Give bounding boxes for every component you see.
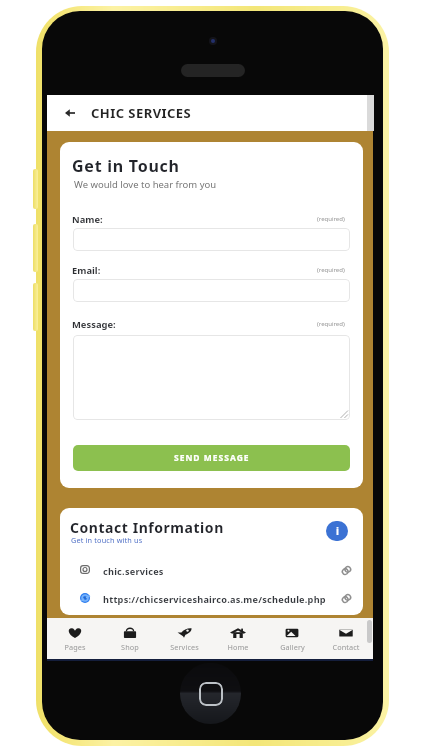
button[interactable]: chic.services (60, 559, 363, 580)
staticText: Shop (121, 642, 139, 652)
staticText: (required) (317, 266, 345, 274)
button[interactable]: SEND MESSAGE (73, 445, 350, 471)
staticText: SEND MESSAGE (174, 452, 250, 464)
staticText: Contact Information (70, 518, 224, 537)
staticText: Get in Touch (72, 155, 180, 177)
button[interactable] (73, 335, 350, 420)
staticText: CHIC SERVICES (91, 104, 192, 122)
button[interactable]: Back (52, 95, 87, 131)
staticText: Contact (332, 642, 360, 652)
button[interactable]: Information (326, 521, 348, 541)
staticText: Gallery (280, 642, 305, 652)
staticText: i (336, 524, 339, 538)
staticText: We would love to hear from you (74, 178, 217, 191)
button[interactable]: https://chicserviceshairco.as.me/schedul… (60, 587, 363, 608)
staticText: Email: (72, 264, 101, 277)
button[interactable]: Pages (47, 618, 102, 652)
staticText: Get in touch with us (71, 535, 143, 545)
button[interactable]: Shop (102, 618, 157, 652)
staticText: chic.services (103, 565, 164, 578)
staticText: https://chicserviceshairco.as.me/schedul… (103, 593, 326, 606)
staticText: Home (227, 642, 249, 652)
staticText: Services (170, 642, 199, 652)
button[interactable]: Services (157, 618, 211, 652)
button[interactable]: Home button (180, 663, 241, 724)
button[interactable]: Gallery (265, 618, 319, 652)
button[interactable]: Home (211, 618, 265, 652)
button[interactable] (73, 279, 350, 302)
staticText: (required) (317, 215, 345, 223)
button[interactable] (73, 228, 350, 251)
staticText: Message: (72, 318, 116, 331)
staticText: (required) (317, 320, 345, 328)
staticText: Pages (64, 642, 86, 652)
button[interactable]: Contact (319, 618, 373, 652)
staticText: Name: (72, 213, 103, 226)
